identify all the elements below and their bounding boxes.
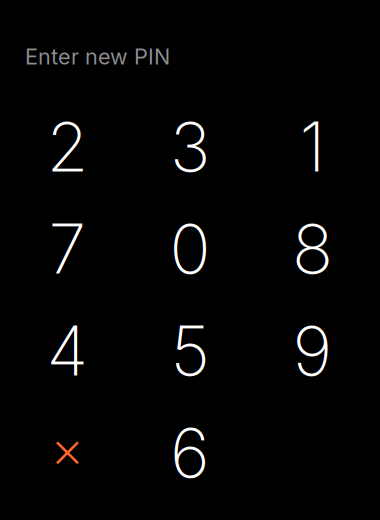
staticText: 4 [46, 310, 88, 392]
staticText: 8 [292, 208, 333, 290]
staticText: 5 [170, 310, 209, 392]
staticText: Enter new PIN [25, 43, 170, 70]
staticText: 0 [169, 208, 210, 290]
button[interactable]: 8 [251, 198, 374, 300]
staticText: 6 [170, 412, 210, 494]
staticText: 2 [46, 106, 88, 188]
button[interactable]: 1 [251, 96, 374, 198]
button[interactable]: 9 [251, 300, 374, 402]
staticText: 1 [299, 106, 325, 188]
button[interactable]: 4 [6, 300, 129, 402]
button[interactable]: 0 [129, 198, 251, 300]
button[interactable]: 3 [129, 96, 251, 198]
button[interactable]: 2 [6, 96, 129, 198]
button[interactable]: 7 [6, 198, 129, 300]
staticText: 3 [170, 106, 210, 188]
staticText: 7 [48, 208, 86, 290]
button[interactable]: Delete [6, 402, 129, 504]
button[interactable]: 6 [129, 402, 251, 504]
staticText: 9 [292, 310, 332, 392]
button[interactable]: 5 [129, 300, 251, 402]
